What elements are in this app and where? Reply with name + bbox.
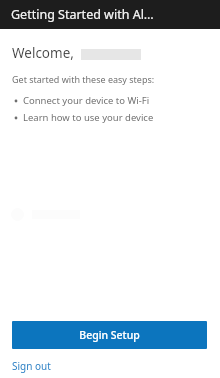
staticText: Getting Started with Al… bbox=[11, 6, 154, 23]
staticText: Welcome, bbox=[12, 44, 74, 62]
button[interactable]: Getting Started with Al… bbox=[0, 0, 220, 29]
staticText: Begin Setup bbox=[79, 328, 140, 342]
button[interactable]: Connect your device to Wi-Fi bbox=[14, 94, 220, 107]
button[interactable]: Begin Setup bbox=[12, 321, 207, 349]
staticText: Learn how to use your device bbox=[23, 111, 154, 124]
staticText: Get started with these easy steps: bbox=[12, 73, 155, 85]
staticText: Connect your device to Wi-Fi bbox=[23, 94, 150, 107]
button[interactable]: Sign out bbox=[12, 359, 51, 373]
staticText: Sign out bbox=[12, 359, 51, 373]
button[interactable]: Learn how to use your device bbox=[14, 111, 220, 124]
